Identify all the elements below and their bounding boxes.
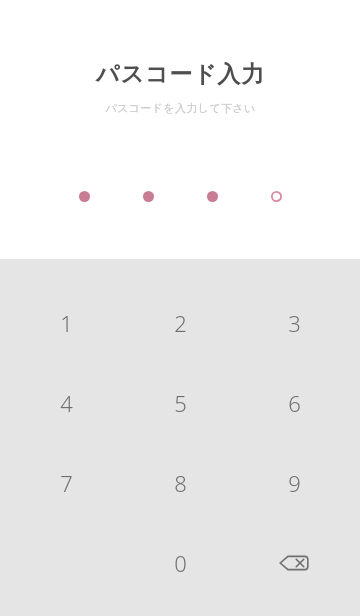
button[interactable]: 8 (132, 443, 228, 523)
button[interactable]: Delete (246, 523, 342, 603)
button[interactable]: 3 (246, 283, 342, 363)
staticText: 1 (60, 308, 73, 338)
button[interactable]: 0 (132, 523, 228, 603)
staticText: 0 (174, 548, 187, 578)
staticText: 4 (60, 388, 73, 418)
staticText: 9 (288, 468, 301, 498)
staticText: 8 (174, 468, 187, 498)
staticText: 7 (60, 468, 73, 498)
button[interactable]: 9 (246, 443, 342, 523)
button[interactable]: 6 (246, 363, 342, 443)
button[interactable]: 2 (132, 283, 228, 363)
button[interactable]: 1 (18, 283, 114, 363)
button[interactable]: 5 (132, 363, 228, 443)
staticText: 2 (174, 308, 187, 338)
button[interactable]: 4 (18, 363, 114, 443)
staticText: パスコード入力 (96, 60, 265, 89)
staticText: 3 (288, 308, 301, 338)
staticText: パスコードを入力して下さい (105, 101, 256, 115)
staticText: 5 (174, 388, 187, 418)
button[interactable]: 7 (18, 443, 114, 523)
staticText: 6 (288, 388, 301, 418)
